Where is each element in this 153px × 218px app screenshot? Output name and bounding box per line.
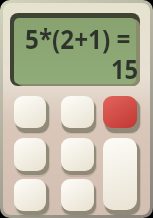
- button[interactable]: [14, 179, 46, 211]
- button[interactable]: [61, 96, 94, 128]
- staticText: 15: [111, 50, 138, 87]
- button[interactable]: [61, 138, 94, 171]
- staticText: 5*(2+1) =: [25, 20, 131, 57]
- button[interactable]: [103, 138, 137, 210]
- button[interactable]: [14, 96, 46, 128]
- button[interactable]: [103, 96, 137, 128]
- button[interactable]: [14, 138, 46, 171]
- button[interactable]: [61, 179, 94, 211]
- button[interactable]: [14, 18, 136, 84]
